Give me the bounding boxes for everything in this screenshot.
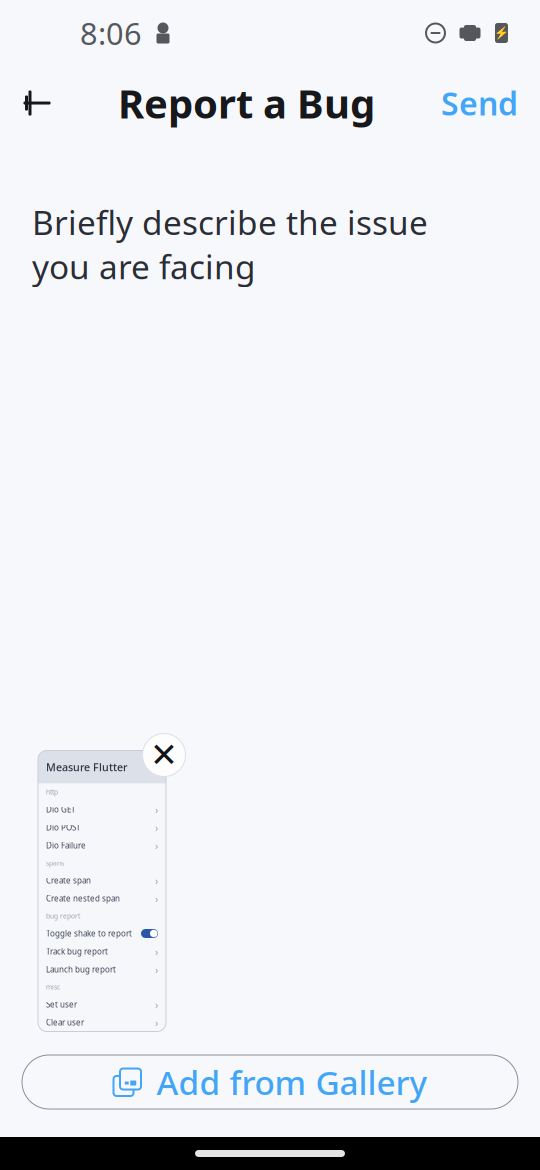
staticText: › xyxy=(155,838,158,853)
button[interactable]: Add from Gallery xyxy=(22,1055,518,1109)
staticText: Launch bug report xyxy=(46,964,116,975)
staticText: Report a Bug xyxy=(118,76,375,129)
staticText: spans xyxy=(46,859,64,867)
staticText: Create nested span xyxy=(46,893,120,904)
staticText: Measure Flutter xyxy=(46,760,128,774)
staticText: misc xyxy=(46,983,60,991)
staticText: Dio Failure xyxy=(46,840,86,851)
staticText: ⚡ xyxy=(494,26,509,40)
staticText: Dio GET xyxy=(46,804,75,815)
staticText: Dio POST xyxy=(46,822,80,833)
staticText: 8:06 xyxy=(80,13,142,53)
staticText: http xyxy=(46,788,58,796)
staticText: › xyxy=(155,891,158,906)
staticText: › xyxy=(155,802,158,817)
staticText: Clear user xyxy=(46,1017,84,1028)
staticText: › xyxy=(155,997,158,1012)
staticText: Create span xyxy=(46,875,91,886)
staticText: › xyxy=(155,1015,158,1030)
button[interactable]: Back xyxy=(0,66,74,140)
staticText: ✕ xyxy=(150,736,178,774)
staticText: › xyxy=(155,962,158,977)
staticText: Send xyxy=(441,82,518,124)
staticText: › xyxy=(155,944,158,959)
staticText: › xyxy=(155,820,158,835)
staticText: Toggle shake to report xyxy=(46,928,132,939)
staticText: Add from Gallery xyxy=(156,1060,427,1104)
button[interactable]: Remove screenshot xyxy=(142,733,186,777)
staticText: › xyxy=(155,873,158,888)
staticText: Briefly describe the issue you are facin… xyxy=(32,200,428,288)
staticText: bug report xyxy=(46,912,80,920)
staticText: Track bug report xyxy=(46,946,108,957)
button[interactable]: Send xyxy=(419,66,540,140)
staticText: Set user xyxy=(46,999,77,1010)
